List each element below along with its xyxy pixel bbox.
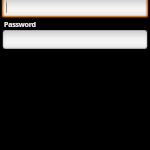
button[interactable]: Password text field: [0, 29, 150, 50]
button[interactable]: Username text field: [0, 0, 150, 21]
staticText: Password: [4, 20, 36, 30]
